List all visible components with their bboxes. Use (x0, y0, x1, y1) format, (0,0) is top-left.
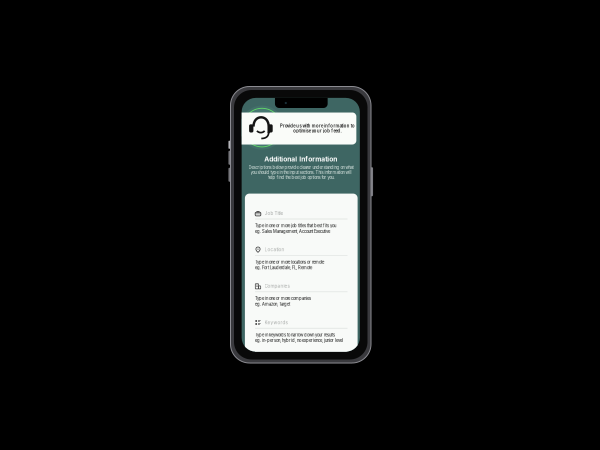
staticText: Type in one or more locations or remote (255, 260, 324, 265)
staticText: Location (265, 247, 285, 252)
staticText: Type in one or more job titles that best… (255, 223, 336, 228)
button[interactable]: Location (255, 247, 347, 283)
button[interactable]: Companies (255, 283, 347, 319)
staticText: Companies (265, 283, 290, 289)
staticText: Type in keywords to narrow down your res… (255, 332, 335, 337)
button[interactable]: Keywords (255, 319, 347, 356)
staticText: eg. Fort Lauderdale, FL, Remote (255, 265, 312, 270)
staticText: eg. Sales Management, Account Executive (255, 229, 330, 234)
button[interactable]: Job Title (255, 210, 347, 247)
staticText: eg. Amazon, Target (255, 302, 290, 307)
staticText: Keywords (265, 320, 288, 325)
staticText: Provide us with more information to opti… (280, 123, 355, 133)
staticText: Type in one or more companies (255, 296, 311, 301)
staticText: Descriptions below provide clearer under… (248, 165, 353, 180)
staticText: eg. in-person, hybrid, no experience, ju… (255, 338, 343, 343)
staticText: Job Title (265, 211, 284, 216)
staticText: Additional Information (264, 155, 337, 163)
